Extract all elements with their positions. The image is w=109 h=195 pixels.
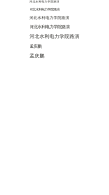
staticText: 孟庆鹏: [29, 53, 44, 59]
staticText: 河北水利电力学院路演: [29, 15, 69, 20]
staticText: 河北水利电力学院路演: [29, 0, 59, 3]
staticText: 河北水利电力学院路演: [29, 24, 69, 29]
staticText: 孟庆鹏: [29, 43, 41, 49]
staticText: 河北水利电力学院路演: [29, 33, 79, 39]
staticText: 河北水利电力学院路演: [29, 7, 59, 11]
